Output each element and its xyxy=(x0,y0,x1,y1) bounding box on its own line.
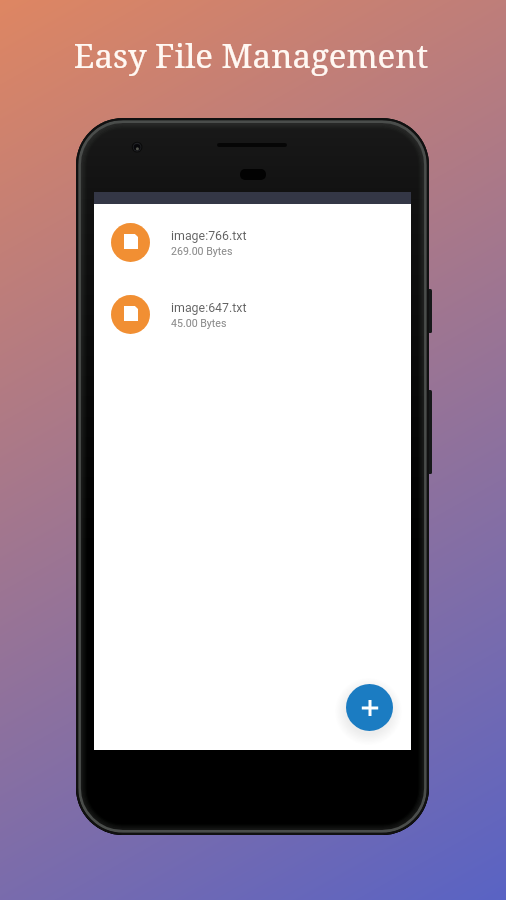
button[interactable]: Add file xyxy=(346,684,393,731)
staticText: image:766.txt xyxy=(171,228,247,243)
button[interactable]: image:766.txt xyxy=(94,213,411,271)
staticText: 45.00 Bytes xyxy=(171,317,227,329)
staticText: Easy File Management xyxy=(0,33,504,78)
staticText: 269.00 Bytes xyxy=(171,245,233,257)
staticText: image:647.txt xyxy=(171,300,247,315)
button[interactable]: image:647.txt xyxy=(94,285,411,343)
